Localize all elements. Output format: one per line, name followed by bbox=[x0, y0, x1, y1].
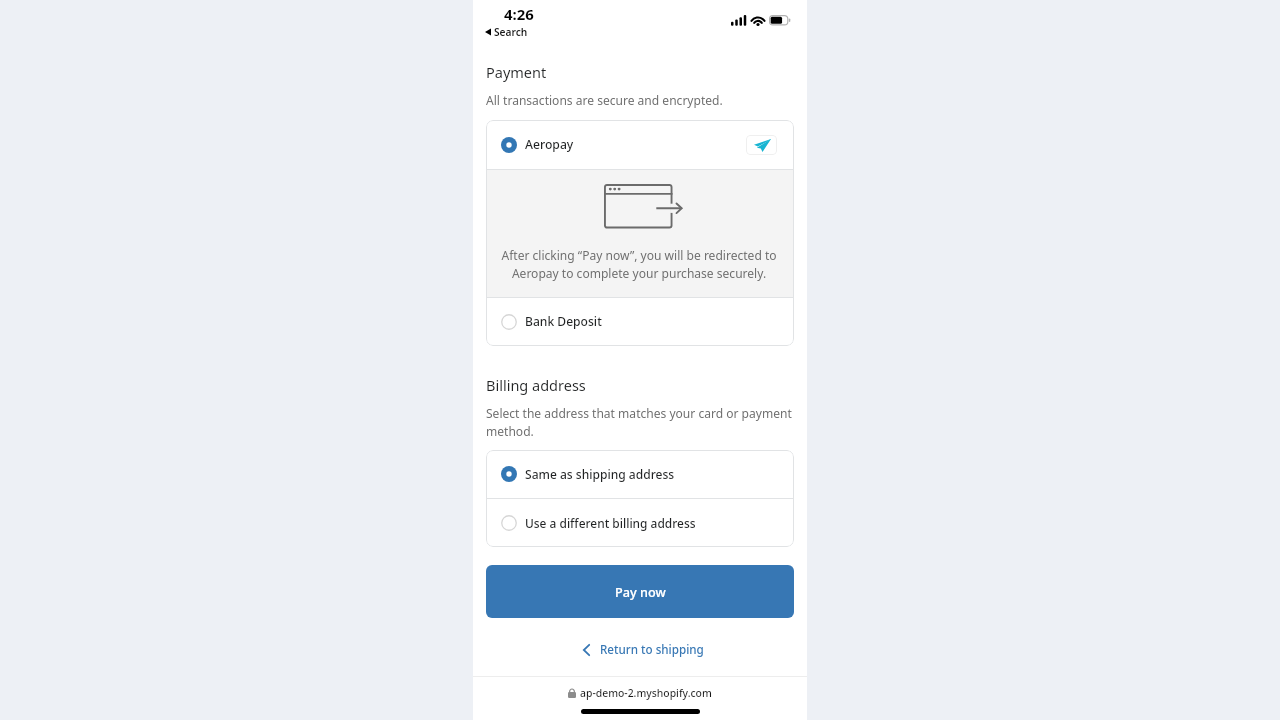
button[interactable]: Aeropay bbox=[486, 120, 794, 169]
staticText: Payment bbox=[486, 62, 547, 82]
staticText: 4:26 bbox=[504, 4, 534, 24]
staticText: Pay now bbox=[615, 583, 666, 600]
button[interactable]: Same as shipping address bbox=[486, 450, 794, 498]
staticText: ap-demo-2.myshopify.com bbox=[580, 686, 712, 700]
staticText: Aeropay bbox=[525, 136, 574, 153]
button[interactable]: Bank Deposit bbox=[486, 298, 794, 346]
other: Aeropay logo bbox=[746, 135, 777, 155]
staticText: Search bbox=[494, 25, 528, 39]
staticText: Same as shipping address bbox=[525, 466, 675, 482]
staticText: Use a different billing address bbox=[525, 515, 696, 531]
staticText: Select the address that matches your car… bbox=[486, 405, 796, 439]
staticText: Billing address bbox=[486, 375, 586, 395]
staticText: Bank Deposit bbox=[525, 313, 602, 329]
staticText: All transactions are secure and encrypte… bbox=[486, 92, 723, 108]
staticText: After clicking “Pay now”, you will be re… bbox=[497, 247, 781, 281]
staticText: Return to shipping bbox=[600, 642, 704, 658]
button[interactable]: Search bbox=[485, 25, 528, 39]
button[interactable]: Return to shipping bbox=[476, 639, 810, 661]
button[interactable]: Use a different billing address bbox=[486, 499, 794, 547]
button[interactable]: Pay now bbox=[486, 565, 794, 618]
